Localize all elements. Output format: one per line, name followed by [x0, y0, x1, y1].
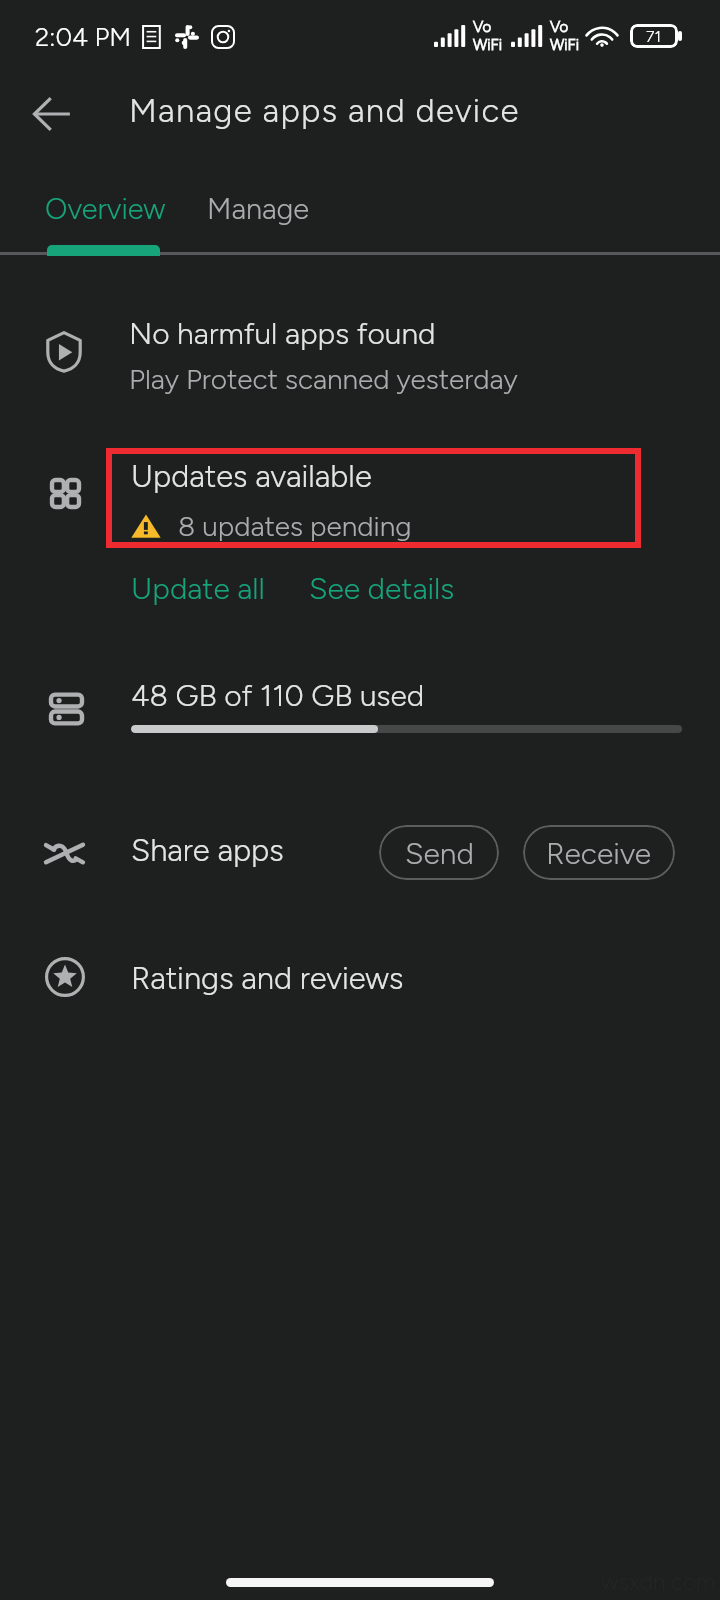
- staticText: No harmful apps found: [129, 315, 436, 351]
- staticText: Send: [405, 835, 474, 871]
- staticText: 2:04 PM: [35, 21, 132, 52]
- button[interactable]: Send: [379, 825, 499, 880]
- staticText: 71: [646, 27, 662, 46]
- staticText: Manage apps and device: [129, 91, 520, 131]
- button[interactable]: Overview: [0, 169, 210, 247]
- staticText: Overview: [45, 191, 166, 226]
- staticText: Vo: [473, 18, 492, 36]
- staticText: Update all: [131, 570, 265, 606]
- button[interactable]: Ratings and reviews: [0, 930, 720, 1040]
- staticText: 8 updates pending: [178, 509, 412, 543]
- staticText: See details: [309, 570, 455, 606]
- staticText: WiFi: [473, 36, 502, 54]
- staticText: Share apps: [131, 832, 284, 869]
- button[interactable]: Receive: [523, 825, 675, 880]
- staticText: Ratings and reviews: [131, 960, 404, 997]
- staticText: Updates available: [131, 458, 372, 495]
- staticText: Manage: [207, 191, 310, 226]
- button[interactable]: Update all: [131, 570, 265, 606]
- button[interactable]: See details: [309, 570, 455, 606]
- staticText: Receive: [546, 835, 652, 871]
- button[interactable]: No harmful apps found: [0, 290, 720, 430]
- staticText: Play Protect scanned yesterday: [129, 362, 518, 396]
- staticText: 48 GB of 110 GB used: [131, 677, 425, 713]
- button[interactable]: Back: [16, 86, 86, 142]
- button[interactable]: Manage: [161, 169, 355, 247]
- staticText: WiFi: [550, 36, 579, 54]
- staticText: Vo: [550, 18, 569, 36]
- button[interactable]: [52, 480, 79, 507]
- button[interactable]: 48 GB of 110 GB used: [0, 650, 720, 790]
